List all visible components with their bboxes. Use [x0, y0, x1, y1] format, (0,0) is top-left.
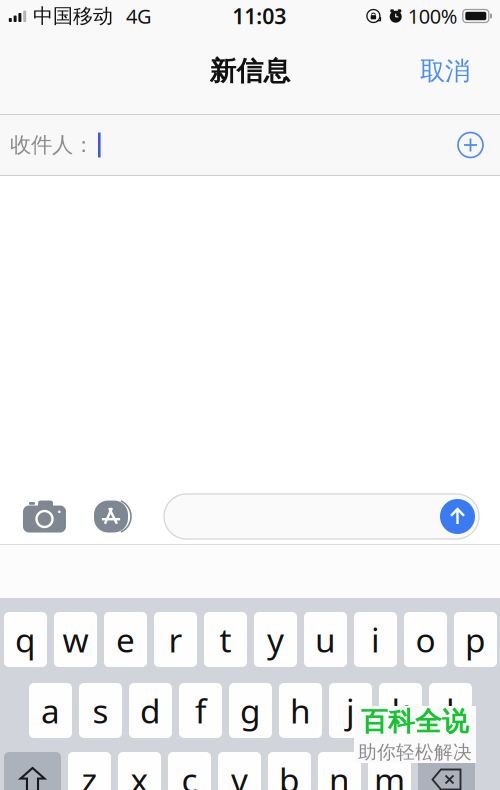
staticText: u [315, 617, 336, 662]
staticText: 4G [126, 3, 152, 29]
staticText: d [140, 688, 161, 733]
staticText: 取消 [420, 55, 470, 86]
staticText: h [290, 688, 311, 733]
staticText: 中国移动 [33, 4, 113, 28]
button[interactable]: h [279, 683, 322, 738]
button[interactable]: u [304, 612, 347, 667]
staticText: 收件人： [10, 132, 94, 158]
staticText: 11:03 [232, 2, 286, 30]
button[interactable]: o [404, 612, 447, 667]
button[interactable]: x [118, 752, 161, 790]
staticText: v [231, 757, 248, 790]
staticText: a [41, 688, 60, 733]
button[interactable]: Send [440, 499, 475, 534]
staticText: o [415, 617, 435, 662]
staticText: f [195, 688, 206, 733]
staticText: 助你轻松解决 [358, 741, 472, 764]
button[interactable]: 取消 [406, 45, 484, 96]
staticText: 100% [408, 3, 458, 29]
button[interactable]: g [229, 683, 272, 738]
button[interactable]: n [318, 752, 361, 790]
staticText: g [240, 688, 261, 733]
staticText: j [346, 688, 355, 733]
button[interactable]: a [29, 683, 72, 738]
staticText: n [329, 757, 350, 790]
button[interactable]: k [379, 683, 422, 738]
button[interactable]: t [204, 612, 247, 667]
button[interactable]: i [354, 612, 397, 667]
staticText: l [446, 688, 455, 733]
staticText: x [130, 757, 148, 790]
button[interactable]: v [218, 752, 261, 790]
staticText: p [465, 617, 486, 662]
button[interactable]: d [129, 683, 172, 738]
button[interactable]: q [4, 612, 47, 667]
staticText: r [168, 617, 182, 662]
staticText: e [116, 617, 135, 662]
staticText: z [81, 757, 97, 790]
button[interactable]: f [179, 683, 222, 738]
button[interactable]: Shift [4, 752, 61, 790]
button[interactable]: j [329, 683, 372, 738]
staticText: y [267, 617, 284, 662]
staticText: m [374, 757, 405, 790]
staticText: q [15, 617, 36, 662]
button[interactable]: Camera [23, 500, 66, 532]
button[interactable]: y [254, 612, 297, 667]
button[interactable]: b [268, 752, 311, 790]
button[interactable]: m [368, 752, 411, 790]
button[interactable]: w [54, 612, 97, 667]
staticText: c [181, 757, 197, 790]
staticText: b [279, 757, 300, 790]
staticText: s [92, 688, 108, 733]
button[interactable]: p [454, 612, 497, 667]
button[interactable]: c [168, 752, 211, 790]
button[interactable]: App Store [94, 499, 131, 533]
button[interactable]: r [154, 612, 197, 667]
button[interactable]: Delete [418, 752, 475, 790]
staticText: 百科全说 [361, 705, 469, 738]
staticText: t [219, 617, 231, 662]
button[interactable]: z [68, 752, 111, 790]
button[interactable]: 收件人： [0, 115, 500, 175]
button[interactable]: l [429, 683, 472, 738]
staticText: i [371, 617, 380, 662]
button[interactable]: e [104, 612, 147, 667]
staticText: 新信息 [209, 55, 290, 87]
staticText: w [62, 617, 88, 662]
button[interactable]: s [79, 683, 122, 738]
staticText: k [391, 688, 409, 733]
